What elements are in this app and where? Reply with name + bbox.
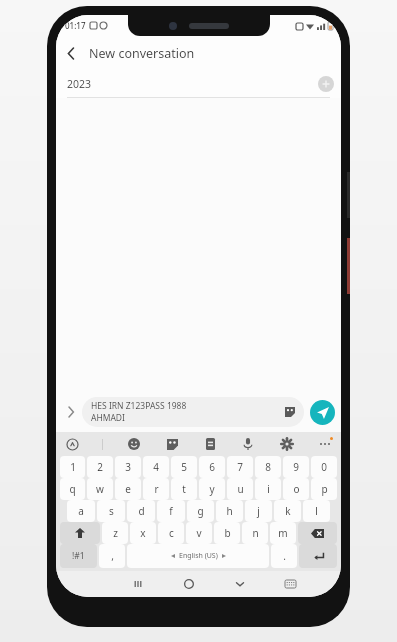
button[interactable]: Emoji	[126, 436, 142, 452]
button[interactable]: 7	[227, 456, 253, 478]
button[interactable]: c	[158, 522, 184, 544]
button[interactable]: Hide keyboard	[214, 571, 265, 597]
button[interactable]: h	[216, 500, 243, 522]
staticText: q	[69, 482, 76, 496]
staticText: r	[154, 482, 159, 496]
staticText: a	[78, 504, 84, 518]
staticText: m	[278, 526, 288, 540]
button[interactable]: o	[283, 478, 309, 500]
button[interactable]: Recents	[112, 571, 163, 597]
button[interactable]: t	[171, 478, 197, 500]
button[interactable]: 1	[60, 456, 85, 478]
button[interactable]: Switch keyboard	[265, 571, 316, 597]
button[interactable]: 8	[255, 456, 281, 478]
button[interactable]: Enter	[299, 544, 337, 568]
staticText: h	[226, 504, 233, 518]
staticText: e	[125, 482, 131, 496]
staticText: 2	[97, 460, 103, 474]
staticText: 5	[181, 460, 187, 474]
button[interactable]: 2	[87, 456, 113, 478]
staticText: 01:17	[65, 20, 86, 31]
button[interactable]: j	[245, 500, 272, 522]
staticText: 6	[209, 460, 215, 474]
button[interactable]: q	[60, 478, 85, 500]
staticText: 2023	[67, 77, 318, 91]
staticText: 7	[237, 460, 243, 474]
staticText: HES IRN Z123PASS 1988	[91, 400, 187, 412]
staticText: y	[209, 482, 215, 496]
button[interactable]: z	[102, 522, 128, 544]
button[interactable]: 4	[143, 456, 169, 478]
button[interactable]: k	[274, 500, 301, 522]
button[interactable]: Backspace	[298, 522, 337, 544]
staticText: x	[140, 526, 146, 540]
staticText: t	[182, 482, 186, 496]
staticText: 1	[70, 460, 76, 474]
staticText: 0	[321, 460, 327, 474]
button[interactable]: f	[157, 500, 185, 522]
staticText: p	[321, 482, 328, 496]
staticText: s	[109, 504, 114, 518]
staticText: d	[138, 504, 145, 518]
button[interactable]: Voice input	[240, 436, 256, 452]
button[interactable]: y	[199, 478, 225, 500]
staticText: w	[96, 482, 104, 496]
button[interactable]: Shift	[60, 522, 100, 544]
button[interactable]: n	[242, 522, 268, 544]
button[interactable]: a	[67, 500, 95, 522]
button[interactable]: ,	[99, 544, 125, 568]
button[interactable]: .	[271, 544, 297, 568]
button[interactable]: English (US)	[127, 544, 269, 568]
button[interactable]: Settings	[279, 436, 295, 452]
staticText: o	[293, 482, 300, 496]
button[interactable]: d	[127, 500, 155, 522]
button[interactable]: 0	[311, 456, 337, 478]
button[interactable]: 6	[199, 456, 225, 478]
staticText: z	[113, 526, 118, 540]
staticText: f	[169, 504, 173, 518]
button[interactable]: i	[255, 478, 281, 500]
button[interactable]: Stickers	[164, 436, 180, 452]
staticText: l	[315, 504, 318, 518]
button[interactable]: Clipboard	[202, 436, 218, 452]
staticText: AHMADI	[91, 412, 125, 424]
button[interactable]: e	[115, 478, 141, 500]
staticText: v	[196, 526, 202, 540]
button[interactable]: Gboard	[64, 436, 80, 452]
button[interactable]: HES IRN Z123PASS 1988	[82, 397, 304, 427]
button[interactable]: p	[311, 478, 337, 500]
button[interactable]: l	[303, 500, 330, 522]
button[interactable]: !#1	[60, 544, 97, 568]
button[interactable]: b	[214, 522, 240, 544]
staticText: k	[285, 504, 291, 518]
button[interactable]: Sticker	[282, 404, 298, 420]
button[interactable]: Send	[310, 400, 335, 425]
button[interactable]: u	[227, 478, 253, 500]
button[interactable]: More options	[317, 436, 333, 452]
button[interactable]: Home	[163, 571, 214, 597]
staticText: b	[224, 526, 231, 540]
staticText: c	[169, 526, 174, 540]
button[interactable]: Add	[318, 76, 334, 92]
staticText: .	[283, 549, 286, 563]
button[interactable]: Expand	[62, 403, 80, 421]
staticText: 8	[265, 460, 271, 474]
button[interactable]: 3	[115, 456, 141, 478]
staticText: i	[267, 482, 270, 496]
button[interactable]: Back	[56, 38, 86, 68]
button[interactable]: m	[270, 522, 296, 544]
button[interactable]: 5	[171, 456, 197, 478]
button[interactable]: r	[143, 478, 169, 500]
staticText: English (US)	[179, 551, 218, 561]
button[interactable]: v	[186, 522, 212, 544]
staticText: ,	[111, 549, 114, 563]
staticText: !#1	[72, 550, 85, 562]
staticText: u	[237, 482, 244, 496]
staticText: g	[197, 504, 204, 518]
button[interactable]: s	[97, 500, 125, 522]
button[interactable]: w	[87, 478, 113, 500]
staticText: 4	[153, 460, 159, 474]
button[interactable]: g	[187, 500, 214, 522]
button[interactable]: x	[130, 522, 156, 544]
button[interactable]: 9	[283, 456, 309, 478]
